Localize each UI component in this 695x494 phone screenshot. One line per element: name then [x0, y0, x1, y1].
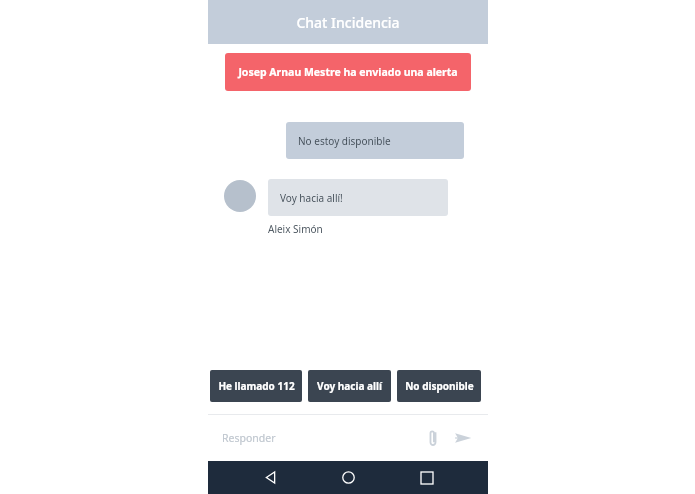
staticText: Josep Arnau Mestre ha enviado una alerta	[238, 65, 458, 79]
staticText: He llamado 112	[218, 379, 295, 393]
button[interactable]: Voy hacia allí!	[268, 179, 448, 216]
staticText: Voy hacia allí	[317, 379, 382, 393]
button[interactable]: Back	[253, 461, 287, 494]
staticText: Voy hacia allí!	[280, 191, 343, 205]
button[interactable]: Attach file	[418, 423, 448, 453]
staticText: Chat Incidencia	[296, 13, 400, 32]
button[interactable]: Send	[448, 423, 478, 453]
button[interactable]: Recent apps	[410, 461, 444, 494]
button[interactable]: He llamado 112	[210, 370, 302, 402]
button[interactable]: Avatar Aleix Simón	[224, 180, 256, 212]
button[interactable]: Voy hacia allí	[308, 370, 391, 402]
staticText: No estoy disponible	[298, 134, 391, 148]
staticText: No disponible	[405, 379, 474, 393]
button[interactable]: Josep Arnau Mestre ha enviado una alerta	[225, 53, 471, 91]
button[interactable]: No disponible	[397, 370, 481, 402]
staticText: Responder	[222, 431, 276, 445]
button[interactable]: No estoy disponible	[286, 122, 464, 159]
button[interactable]: Responder	[222, 431, 418, 445]
button[interactable]: Home	[331, 461, 365, 494]
staticText: Aleix Simón	[268, 222, 323, 236]
